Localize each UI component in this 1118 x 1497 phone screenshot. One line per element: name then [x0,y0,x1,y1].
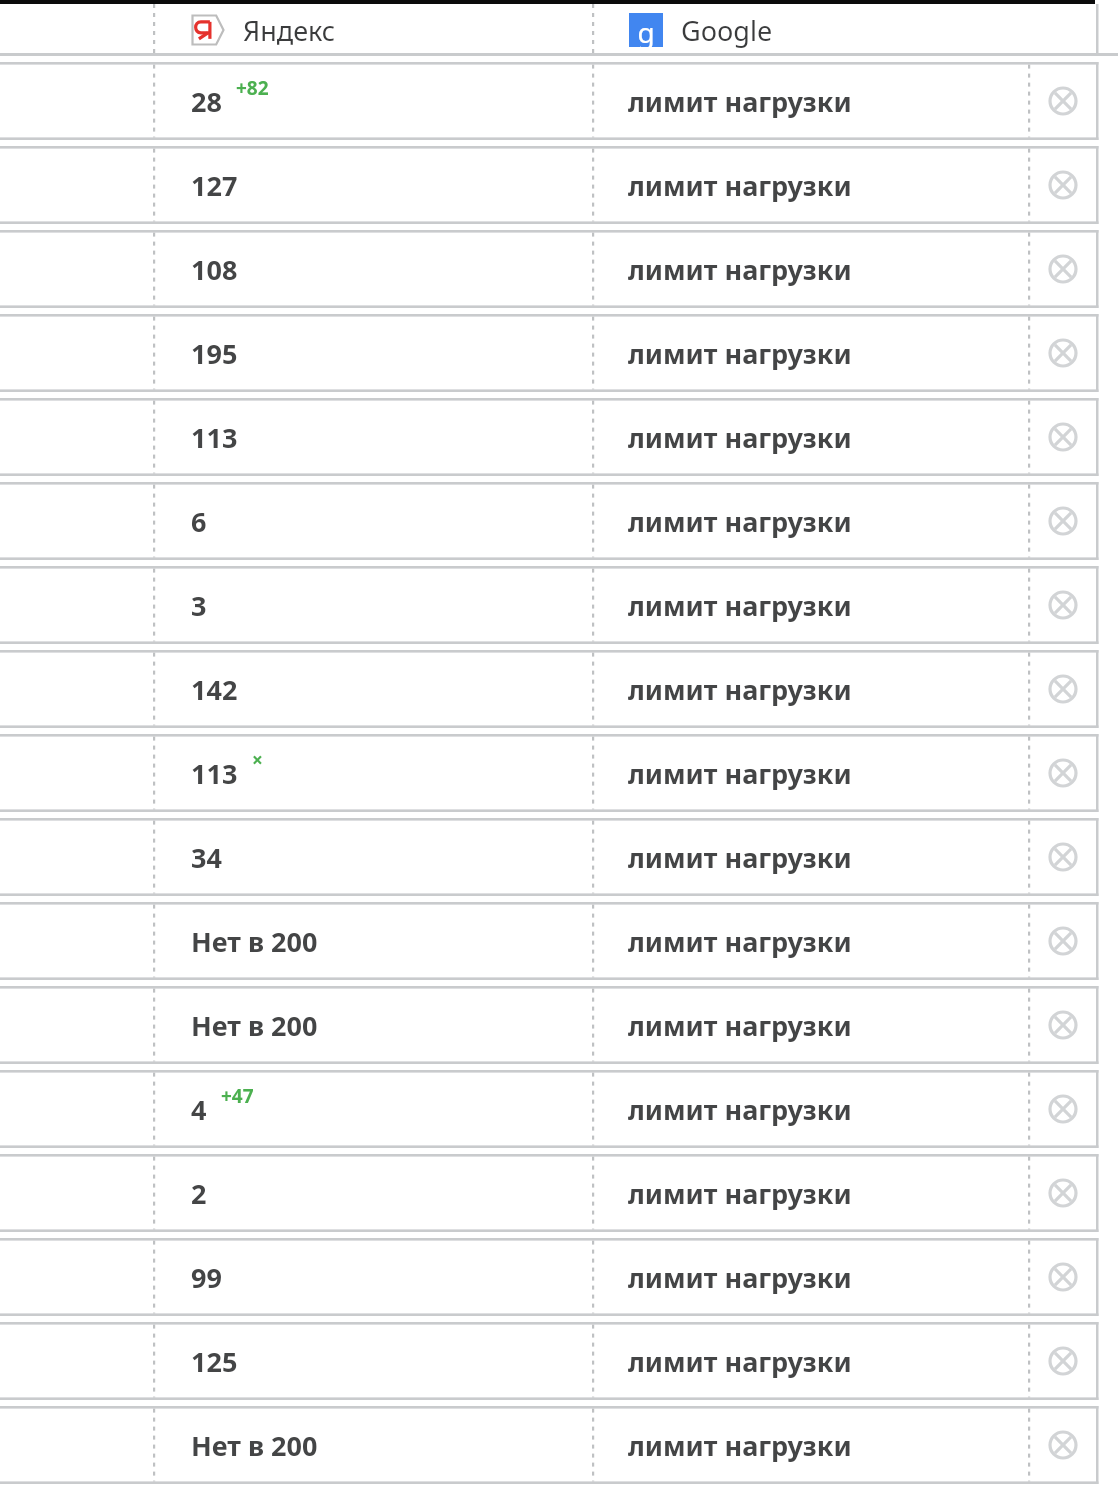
button[interactable]: 113 [0,734,1118,812]
button[interactable]: Яндекс [191,4,411,56]
staticText: g [637,13,655,47]
button[interactable]: Удалить [1035,818,1091,896]
button[interactable]: 28 [0,62,1118,140]
other: Google [629,13,663,47]
staticText: 108 [191,251,238,288]
button[interactable]: 142 [0,650,1118,728]
staticText: 2 [191,1175,207,1212]
button[interactable]: Удалить [1035,1322,1091,1400]
staticText: 127 [191,167,238,204]
button[interactable]: Удалить [1035,1406,1091,1484]
button[interactable]: 6 [0,482,1118,560]
button[interactable]: 195 [0,314,1118,392]
staticText: Яндекс [243,12,336,49]
button[interactable]: Удалить [1035,1070,1091,1148]
button[interactable]: Удалить [1035,1238,1091,1316]
staticText: Google [681,12,773,49]
staticText: лимит нагрузки [628,671,852,708]
staticText: лимит нагрузки [628,419,852,456]
staticText: лимит нагрузки [628,83,852,120]
button[interactable]: Удалить [1035,62,1091,140]
button[interactable]: 99 [0,1238,1118,1316]
staticText: 99 [191,1259,222,1296]
staticText: 142 [191,671,238,708]
button[interactable]: Нет в 200 [0,1406,1118,1484]
staticText: лимит нагрузки [628,167,852,204]
staticText: × [252,747,263,773]
staticText: +82 [236,75,269,101]
other: Яндекс [191,13,225,47]
staticText: 6 [191,503,207,540]
staticText: Нет в 200 [191,1007,318,1044]
button[interactable]: 3 [0,566,1118,644]
button[interactable]: Удалить [1035,230,1091,308]
button[interactable]: Удалить [1035,566,1091,644]
button[interactable]: Удалить [1035,650,1091,728]
staticText: лимит нагрузки [628,1007,852,1044]
button[interactable]: Удалить [1035,902,1091,980]
staticText: лимит нагрузки [628,1259,852,1296]
staticText: лимит нагрузки [628,335,852,372]
staticText: лимит нагрузки [628,503,852,540]
button[interactable]: 125 [0,1322,1118,1400]
staticText: Нет в 200 [191,1427,318,1464]
button[interactable]: Удалить [1035,398,1091,476]
button[interactable]: 113 [0,398,1118,476]
button[interactable]: Нет в 200 [0,986,1118,1064]
staticText: лимит нагрузки [628,1091,852,1128]
staticText: лимит нагрузки [628,1175,852,1212]
button[interactable]: Удалить [1035,1154,1091,1232]
button[interactable]: 108 [0,230,1118,308]
button[interactable]: Удалить [1035,482,1091,560]
button[interactable]: 2 [0,1154,1118,1232]
staticText: лимит нагрузки [628,755,852,792]
button[interactable]: Удалить [1035,986,1091,1064]
button[interactable]: Google [629,4,849,56]
staticText: Нет в 200 [191,923,318,960]
staticText: 113 [191,419,238,456]
staticText: 4 [191,1091,207,1128]
staticText: 125 [191,1343,238,1380]
button[interactable]: 127 [0,146,1118,224]
staticText: +47 [221,1083,254,1109]
button[interactable]: 4 [0,1070,1118,1148]
button[interactable]: Удалить [1035,314,1091,392]
staticText: лимит нагрузки [628,251,852,288]
staticText: лимит нагрузки [628,1427,852,1464]
button[interactable]: Нет в 200 [0,902,1118,980]
staticText: 195 [191,335,238,372]
staticText: 113 [191,755,238,792]
button[interactable]: Удалить [1035,734,1091,812]
button[interactable]: Удалить [1035,146,1091,224]
staticText: 28 [191,83,222,120]
staticText: 3 [191,587,207,624]
staticText: лимит нагрузки [628,923,852,960]
staticText: лимит нагрузки [628,839,852,876]
button[interactable]: 34 [0,818,1118,896]
staticText: 34 [191,839,222,876]
staticText: лимит нагрузки [628,587,852,624]
staticText: лимит нагрузки [628,1343,852,1380]
